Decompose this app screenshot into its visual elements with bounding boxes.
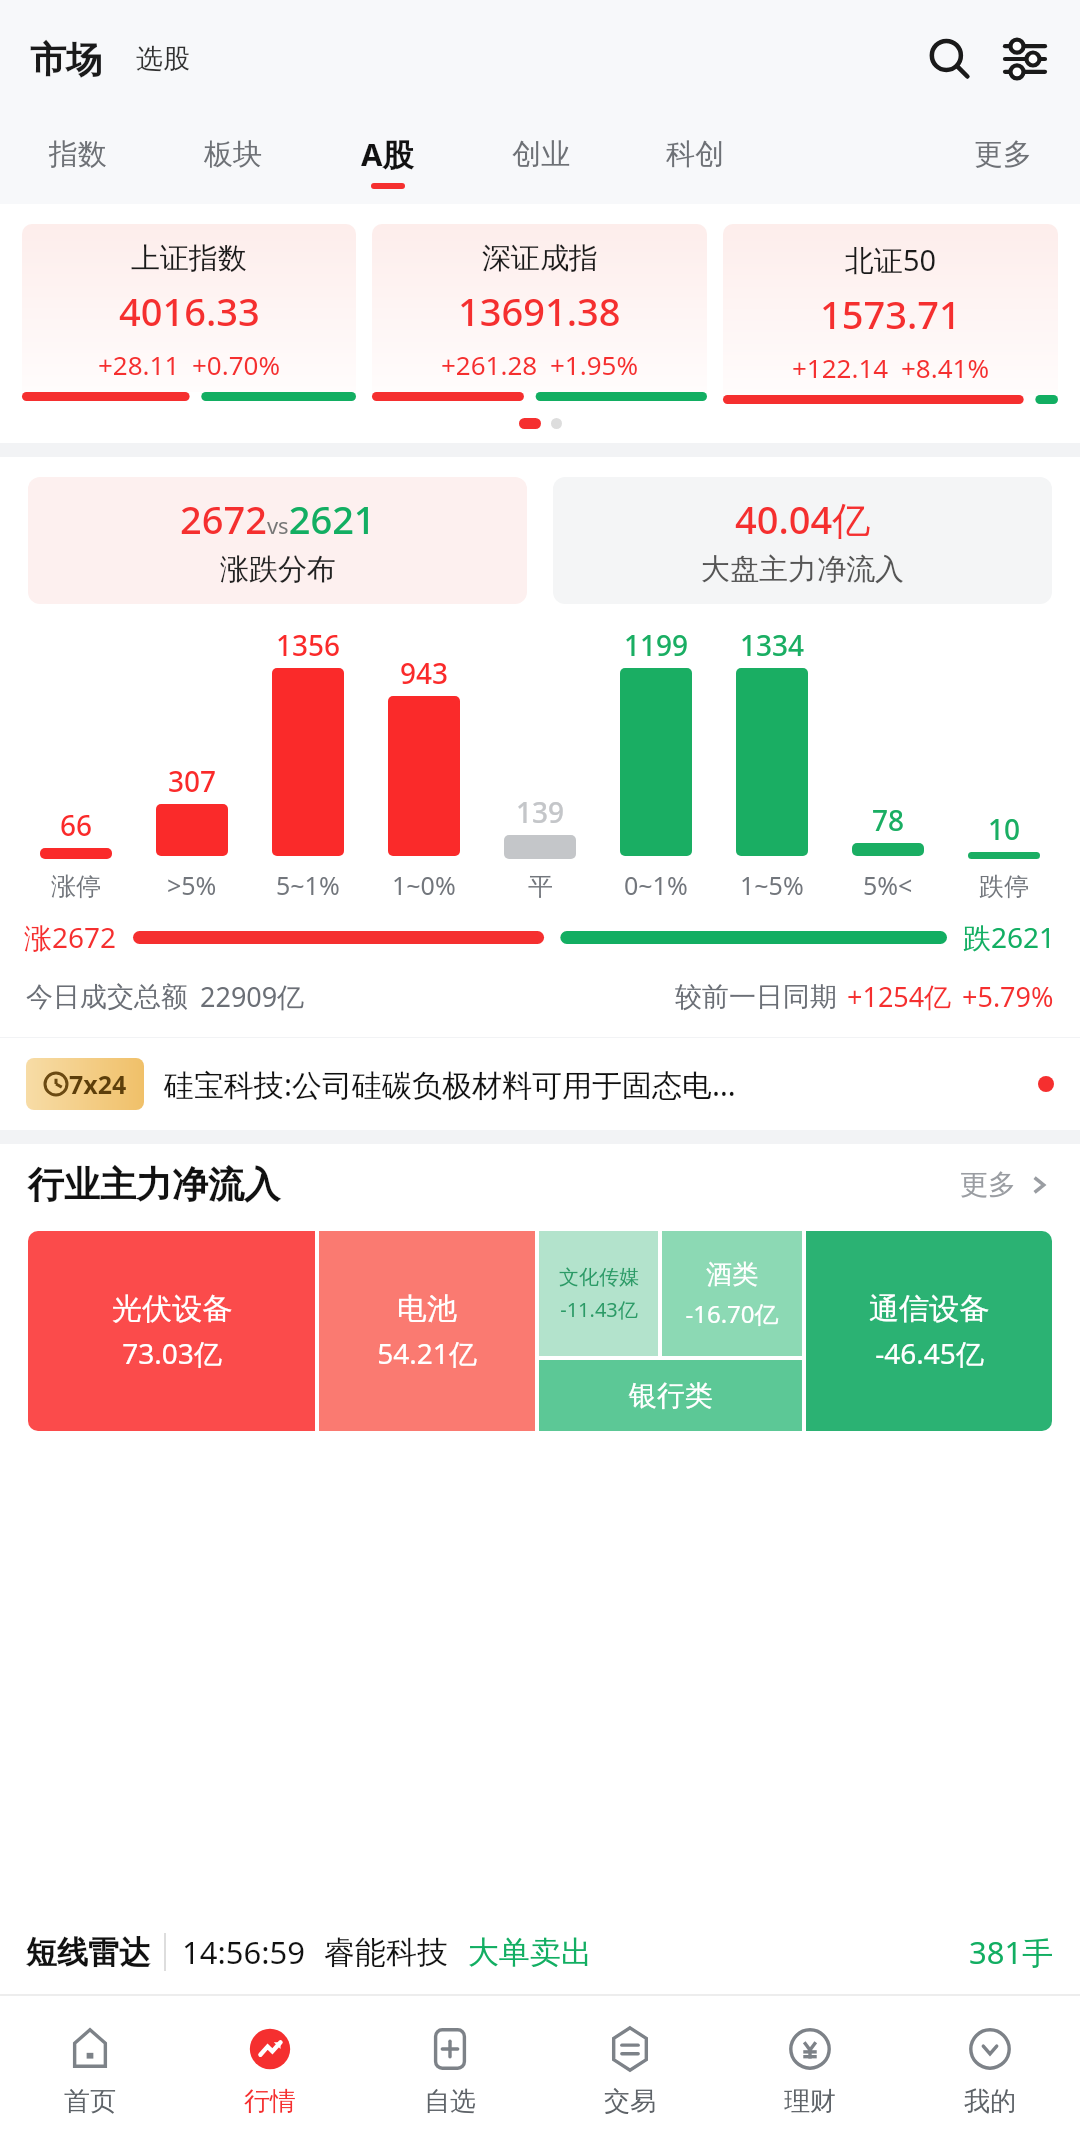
- staticText: 行情: [244, 2085, 296, 2118]
- button[interactable]: 我的: [900, 1996, 1080, 2144]
- button[interactable]: 更多: [926, 118, 1080, 204]
- button[interactable]: 创业: [464, 118, 618, 204]
- staticText: +1254亿: [847, 978, 952, 1015]
- staticText: 54.21亿: [377, 1334, 477, 1372]
- staticText: 0~1%: [624, 868, 688, 902]
- staticText: 1356: [276, 626, 341, 664]
- staticText: 短线雷达: [26, 1933, 150, 1972]
- button[interactable]: 指数: [0, 118, 155, 204]
- staticText: +5.79%: [962, 978, 1054, 1015]
- staticText: 943: [400, 654, 449, 692]
- staticText: 66: [60, 806, 93, 844]
- staticText: 北证50: [845, 240, 937, 280]
- button[interactable]: 板块: [155, 118, 310, 204]
- button[interactable]: 北证50: [723, 224, 1058, 404]
- staticText: 涨停: [51, 871, 101, 902]
- button[interactable]: 银行类: [539, 1360, 802, 1431]
- staticText: 1334: [740, 626, 805, 664]
- staticText: 13691.38: [458, 285, 621, 337]
- staticText: 更多: [960, 1167, 1016, 1202]
- button[interactable]: 自选: [360, 1996, 540, 2144]
- staticText: 涨跌分布: [220, 551, 336, 588]
- button[interactable]: 行情: [180, 1996, 360, 2144]
- staticText: 今日成交总额: [26, 980, 188, 1014]
- staticText: +0.70%: [192, 347, 281, 382]
- button[interactable]: 40.04亿: [553, 477, 1052, 604]
- staticText: 1~5%: [740, 868, 804, 902]
- staticText: 跌停: [979, 871, 1029, 902]
- staticText: +8.41%: [901, 350, 990, 385]
- staticText: 1573.71: [820, 288, 961, 340]
- button[interactable]: Filter: [996, 30, 1054, 88]
- button[interactable]: Search: [918, 28, 980, 90]
- staticText: 我的: [964, 2085, 1016, 2118]
- button[interactable]: 交易: [540, 1996, 720, 2144]
- staticText: 创业: [512, 136, 570, 173]
- staticText: 5%<: [863, 868, 913, 902]
- button[interactable]: 文化传媒: [539, 1231, 658, 1356]
- staticText: 酒类: [706, 1258, 758, 1291]
- staticText: 平: [528, 871, 553, 902]
- button[interactable]: 市场: [30, 37, 102, 82]
- staticText: 涨2672: [24, 918, 117, 956]
- staticText: 1~0%: [392, 868, 456, 902]
- button[interactable]: 通信设备: [806, 1231, 1052, 1431]
- staticText: 硅宝科技:公司硅碳负极材料可用于固态电…: [164, 1064, 736, 1105]
- staticText: 2672vs2621: [180, 493, 376, 545]
- staticText: 78: [872, 801, 905, 839]
- button[interactable]: A股: [310, 118, 464, 204]
- staticText: 通信设备: [869, 1290, 989, 1328]
- staticText: 139: [516, 793, 565, 831]
- staticText: 更多: [974, 136, 1032, 173]
- button[interactable]: 7x24: [0, 1038, 1080, 1130]
- staticText: >5%: [167, 868, 217, 902]
- staticText: 自选: [424, 2085, 476, 2118]
- staticText: 4016.33: [119, 285, 260, 337]
- staticText: 睿能科技: [324, 1933, 448, 1972]
- staticText: 市场: [30, 37, 102, 82]
- staticText: 1199: [624, 626, 689, 664]
- staticText: 7x24: [69, 1067, 127, 1101]
- button[interactable]: 首页: [0, 1996, 180, 2144]
- staticText: +122.14: [792, 350, 889, 385]
- staticText: 银行类: [629, 1378, 713, 1413]
- staticText: 14:56:59: [182, 1931, 306, 1973]
- staticText: 上证指数: [131, 240, 247, 277]
- staticText: 大盘主力净流入: [701, 551, 904, 588]
- staticText: +28.11: [98, 347, 180, 382]
- button[interactable]: 深证成指: [372, 224, 707, 401]
- staticText: 307: [168, 762, 217, 800]
- staticText: 板块: [204, 136, 262, 173]
- button[interactable]: 电池: [319, 1231, 535, 1431]
- staticText: 较前一日同期: [675, 980, 837, 1014]
- staticText: 381手: [969, 1931, 1054, 1973]
- button[interactable]: 更多: [960, 1167, 1052, 1202]
- staticText: 5~1%: [276, 868, 340, 902]
- staticText: +1.95%: [550, 347, 639, 382]
- staticText: -46.45亿: [875, 1334, 984, 1372]
- button[interactable]: 科创: [618, 118, 772, 204]
- staticText: 科创: [666, 136, 724, 173]
- staticText: A股: [361, 133, 414, 175]
- button[interactable]: 2672vs2621: [28, 477, 527, 604]
- staticText: 跌2621: [963, 918, 1056, 956]
- staticText: 大单卖出: [468, 1933, 592, 1972]
- staticText: 10: [988, 810, 1021, 848]
- button[interactable]: 上证指数: [22, 224, 356, 401]
- staticText: 光伏设备: [112, 1290, 232, 1328]
- staticText: 行业主力净流入: [28, 1162, 280, 1207]
- staticText: 选股: [136, 42, 190, 76]
- staticText: 电池: [397, 1290, 457, 1328]
- button[interactable]: 酒类: [662, 1231, 802, 1356]
- button[interactable]: 短线雷达: [0, 1910, 1080, 1994]
- staticText: -16.70亿: [685, 1297, 779, 1330]
- staticText: 首页: [64, 2085, 116, 2118]
- staticText: 73.03亿: [122, 1334, 222, 1372]
- button[interactable]: 选股: [136, 42, 190, 76]
- button[interactable]: 光伏设备: [28, 1231, 315, 1431]
- button[interactable]: 理财: [720, 1996, 900, 2144]
- staticText: +261.28: [441, 347, 538, 382]
- staticText: 40.04亿: [735, 493, 871, 545]
- staticText: 文化传媒: [559, 1265, 639, 1290]
